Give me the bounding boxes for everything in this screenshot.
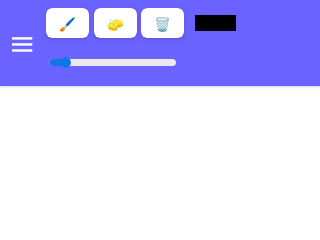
button[interactable]: Brush tool (46, 8, 89, 38)
button[interactable]: Eraser tool (94, 8, 137, 38)
staticText: 🧽 (107, 16, 124, 32)
button[interactable]: Stroke width (45, 52, 181, 73)
button[interactable]: Clear canvas (141, 8, 184, 38)
button[interactable]: Menu (8, 30, 36, 58)
staticText: 🖌️ (59, 16, 76, 32)
staticText: 🗑️ (154, 16, 171, 32)
